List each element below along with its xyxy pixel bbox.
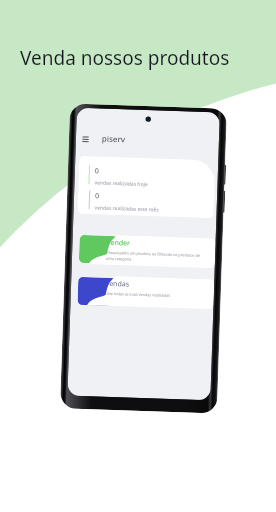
staticText: vendas realizadas este mês bbox=[94, 204, 159, 213]
staticText: Liste todas as suas vendas realizadas bbox=[105, 291, 171, 298]
button[interactable]: Vendas bbox=[86, 275, 214, 309]
button[interactable]: Vender bbox=[88, 234, 216, 268]
button[interactable]: Open navigation menu bbox=[80, 134, 91, 145]
staticText: 0 bbox=[95, 191, 100, 202]
staticText: Venda nossos produtos bbox=[20, 45, 230, 71]
staticText: Pesquisando um produto ou filtrando os p… bbox=[106, 250, 200, 264]
staticText: 0 bbox=[95, 166, 100, 176]
staticText: piserv bbox=[102, 133, 126, 144]
staticText: vendas realizadas hoje bbox=[94, 179, 149, 188]
staticText: Vender bbox=[106, 238, 131, 249]
staticText: Vendas bbox=[105, 279, 129, 289]
